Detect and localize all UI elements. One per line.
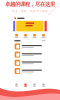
staticText: 专业 · 系统 · 高效学习体验 <box>12 9 48 13</box>
staticText: 卓越的课程，尽在这里 <box>5 1 55 8</box>
